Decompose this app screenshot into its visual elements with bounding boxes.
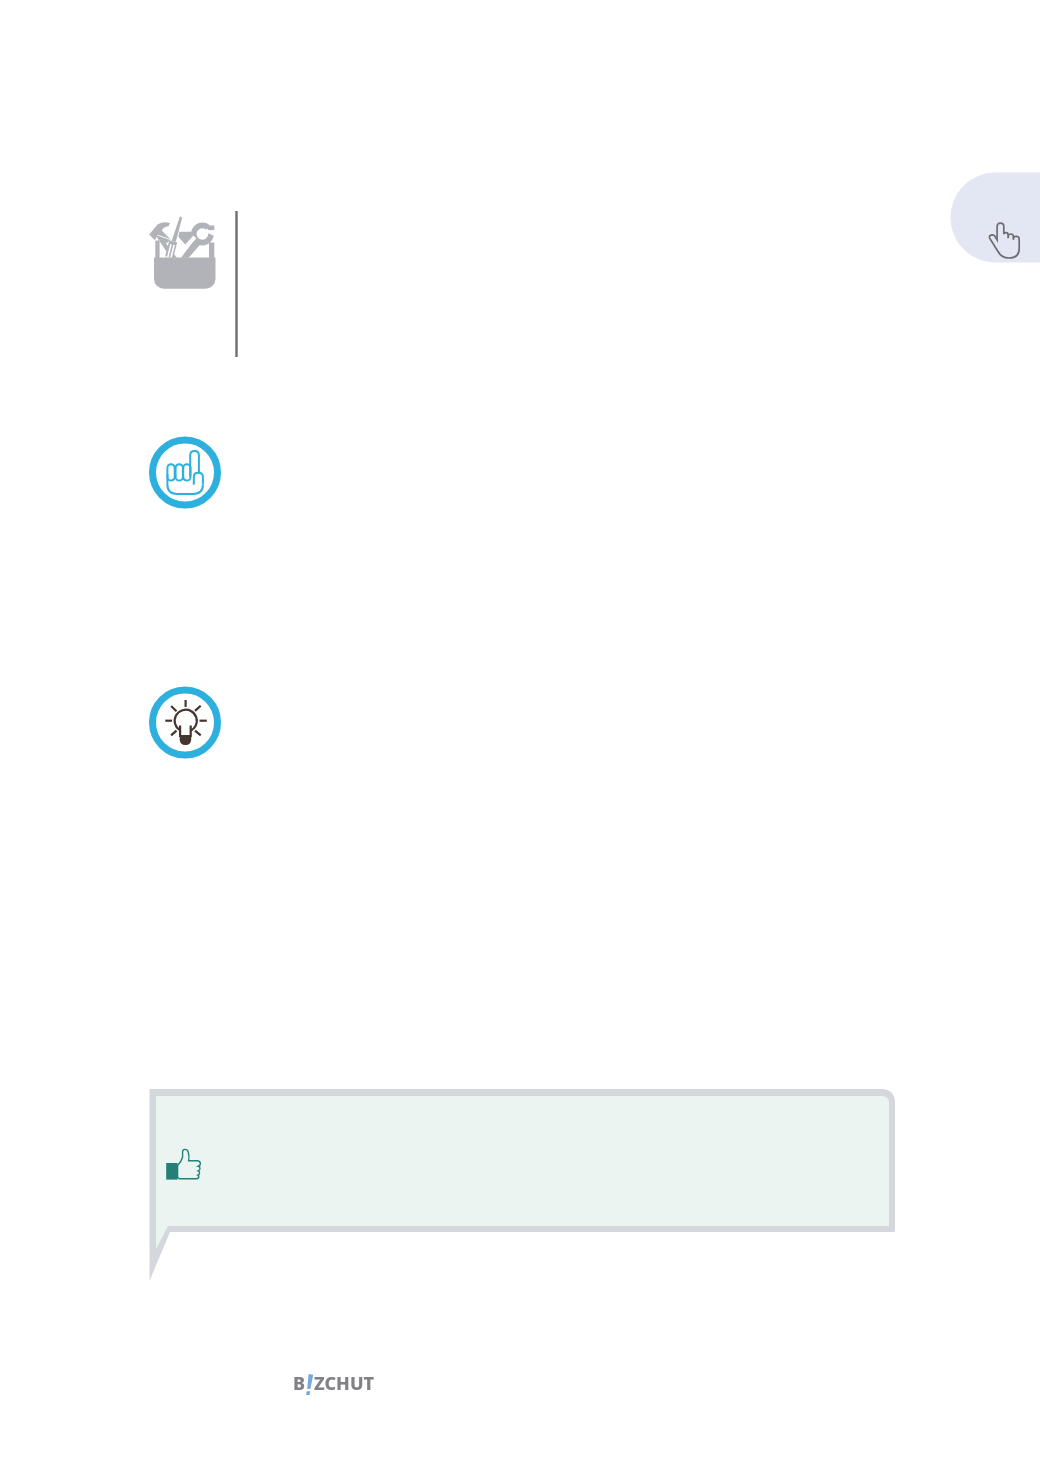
button[interactable]: Bizchut — [293, 1371, 375, 1396]
staticText: ZCHUT — [314, 1371, 375, 1396]
staticText: B — [293, 1371, 306, 1396]
button[interactable]: Recommendation — [149, 1089, 895, 1232]
button[interactable]: Select with pointer — [950, 172, 1040, 262]
button[interactable]: Tip — [149, 687, 221, 759]
button[interactable]: Point — [149, 437, 221, 509]
button[interactable]: Tools — [149, 215, 217, 289]
